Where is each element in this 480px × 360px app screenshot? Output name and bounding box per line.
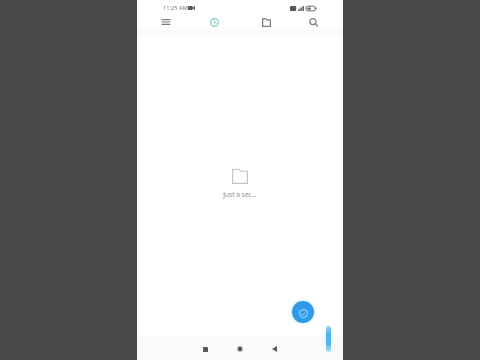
button[interactable]: Search — [303, 12, 323, 32]
staticText: Just a sec... — [223, 190, 257, 199]
button[interactable]: Folders — [256, 12, 276, 32]
staticText: 11:25 AM — [163, 4, 188, 12]
button[interactable]: Recent files — [204, 12, 224, 32]
button[interactable]: Home — [232, 341, 248, 357]
button[interactable]: Secure files — [292, 301, 314, 323]
button[interactable]: Navigation menu — [156, 12, 176, 32]
button[interactable]: Recent apps — [197, 341, 213, 357]
button[interactable]: Back — [266, 341, 282, 357]
